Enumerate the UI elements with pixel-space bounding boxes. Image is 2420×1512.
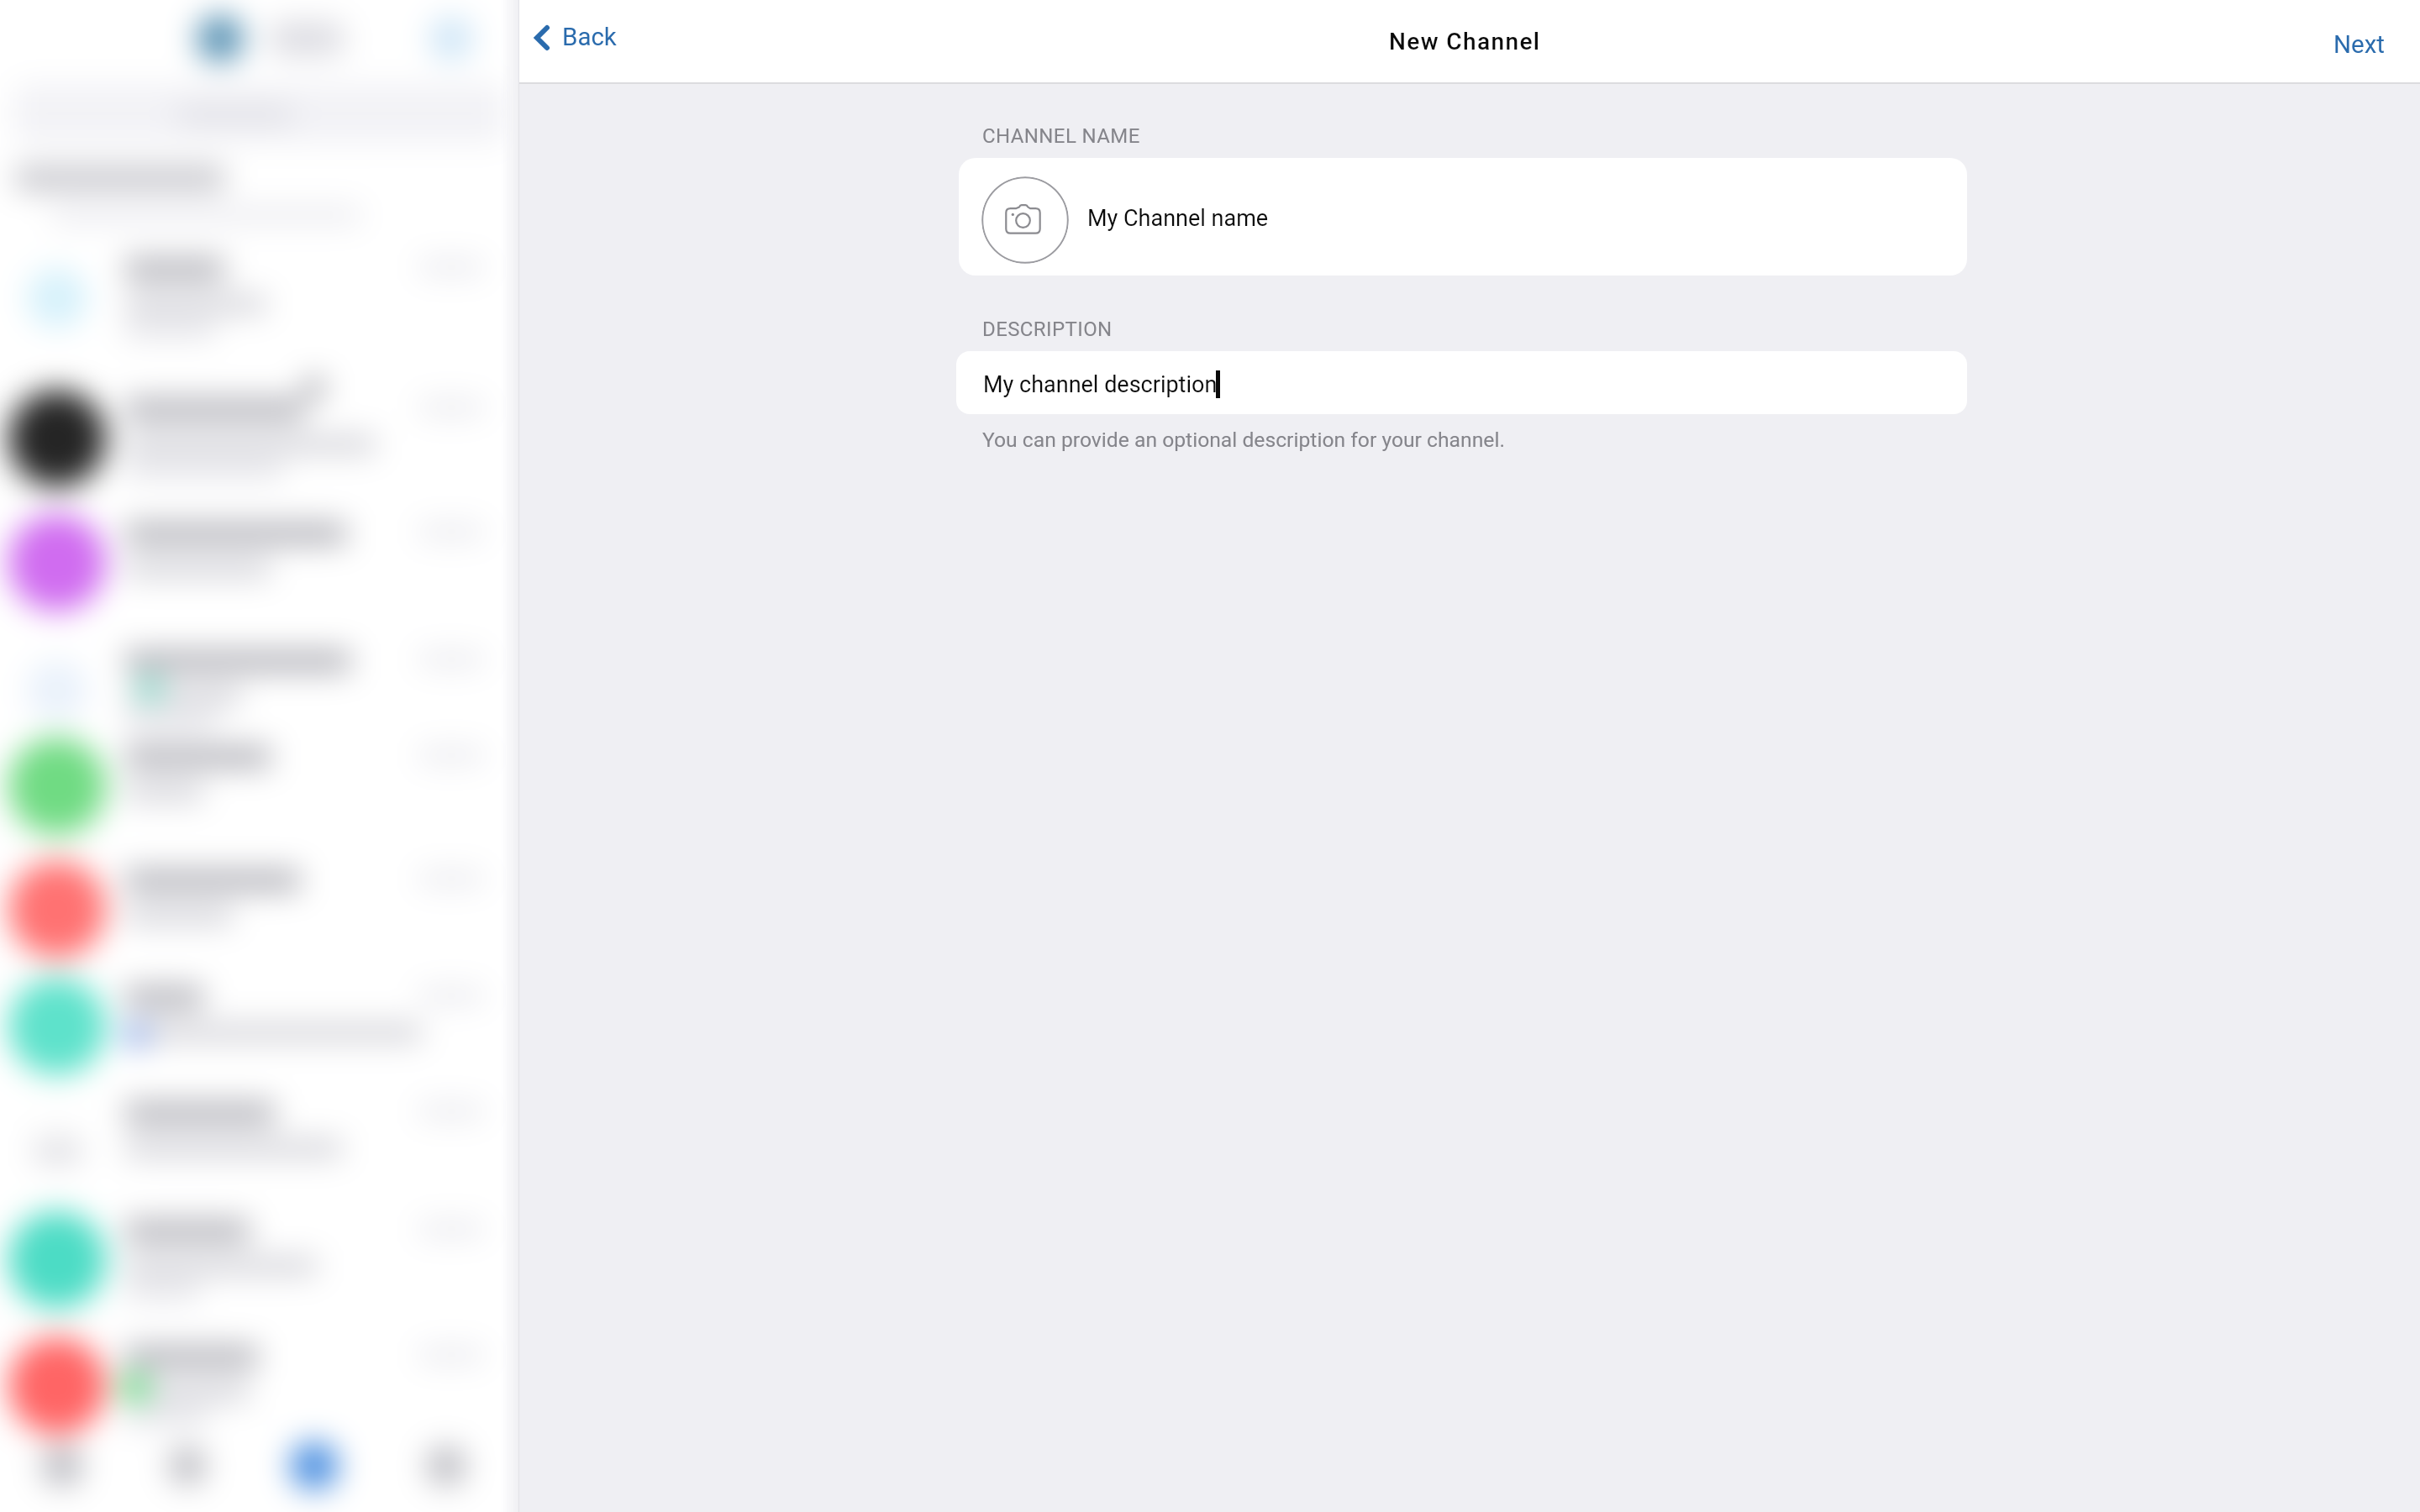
button[interactable]: Next (2300, 9, 2420, 76)
button[interactable]: Back (521, 11, 630, 64)
button[interactable]: Set channel photo (981, 176, 1069, 264)
button[interactable]: My channel description (956, 351, 1967, 414)
staticText: CHANNEL NAME (982, 124, 1140, 148)
staticText: DESCRIPTION (982, 318, 1113, 341)
staticText: My Channel name (1087, 205, 1269, 232)
staticText: My channel description (983, 371, 1218, 398)
staticText: Next (2333, 30, 2385, 60)
staticText: Back (562, 23, 617, 52)
staticText: You can provide an optional description … (982, 428, 1505, 452)
staticText: New Channel (1389, 28, 1541, 55)
button[interactable]: Set channel photo (959, 158, 1967, 276)
